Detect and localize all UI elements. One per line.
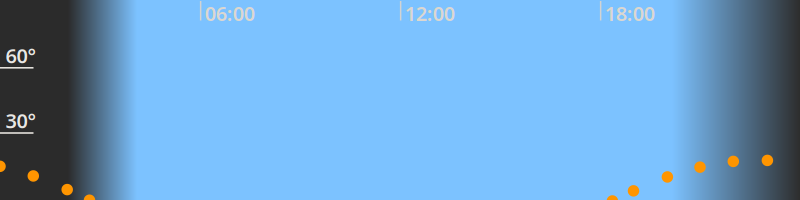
staticText: 12:00 (405, 0, 455, 27)
button[interactable]: Hourly temperature chart (0, 0, 800, 200)
staticText: 06:00 (205, 0, 255, 27)
staticText: 18:00 (605, 0, 655, 27)
staticText: 60° (5, 42, 36, 69)
staticText: 30° (5, 107, 36, 134)
